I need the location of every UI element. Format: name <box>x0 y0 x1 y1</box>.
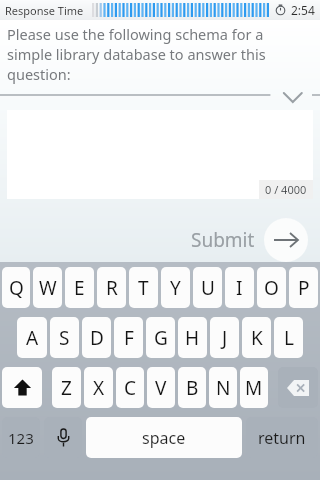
button[interactable]: Collapse <box>276 91 306 107</box>
button[interactable]: J <box>210 317 239 358</box>
staticText: E <box>74 275 85 301</box>
button[interactable]: return <box>246 417 318 458</box>
button[interactable]: Y <box>161 267 190 308</box>
staticText: return <box>258 427 306 449</box>
button[interactable]: E <box>65 267 94 308</box>
staticText: Q <box>9 275 24 301</box>
button[interactable]: H <box>178 317 207 358</box>
staticText: J <box>222 325 228 351</box>
staticText: W <box>39 275 57 301</box>
button[interactable]: 0 / 4000 <box>7 110 313 199</box>
staticText: M <box>245 375 263 401</box>
staticText: O <box>264 275 279 301</box>
button[interactable]: P <box>289 267 318 308</box>
button[interactable]: F <box>114 317 143 358</box>
staticText: H <box>185 325 200 351</box>
staticText: I <box>236 275 243 301</box>
staticText: Y <box>170 275 181 301</box>
button[interactable]: G <box>146 317 175 358</box>
button[interactable]: S <box>50 317 79 358</box>
button[interactable]: U <box>193 267 222 308</box>
staticText: D <box>90 325 104 351</box>
button[interactable]: I <box>225 267 254 308</box>
staticText: R <box>106 275 118 301</box>
staticText: P <box>298 275 310 301</box>
button[interactable]: Z <box>52 367 81 408</box>
button[interactable]: Shift <box>2 367 42 408</box>
staticText: L <box>284 325 294 351</box>
button[interactable]: X <box>84 367 113 408</box>
button[interactable]: R <box>97 267 126 308</box>
button[interactable]: T <box>129 267 158 308</box>
button[interactable]: Backspace <box>278 367 318 408</box>
button[interactable]: space <box>86 417 242 458</box>
button[interactable]: W <box>33 267 62 308</box>
staticText: Submit <box>191 227 255 253</box>
staticText: Z <box>61 375 72 401</box>
button[interactable]: O <box>257 267 286 308</box>
button[interactable]: B <box>178 367 206 408</box>
button[interactable]: D <box>82 317 111 358</box>
button[interactable]: Q <box>2 267 30 308</box>
button[interactable]: N <box>209 367 237 408</box>
staticText: Response Time <box>5 3 84 18</box>
staticText: 2:54 <box>291 2 315 18</box>
staticText: T <box>138 275 149 301</box>
staticText: Please use the following schema for a si… <box>7 24 306 84</box>
staticText: V <box>155 375 167 401</box>
button[interactable]: A <box>17 317 47 358</box>
button[interactable]: 123 <box>2 417 40 458</box>
staticText: N <box>216 375 231 401</box>
staticText: 123 <box>8 428 34 448</box>
button[interactable]: Submit <box>191 218 308 262</box>
button[interactable]: Voice input <box>44 417 82 458</box>
button[interactable]: L <box>274 317 303 358</box>
staticText: K <box>251 325 263 351</box>
staticText: F <box>124 325 134 351</box>
button[interactable]: M <box>240 367 268 408</box>
staticText: G <box>154 325 168 351</box>
staticText: B <box>186 375 199 401</box>
staticText: space <box>142 427 186 449</box>
staticText: A <box>26 325 39 351</box>
staticText: 0 / 4000 <box>265 182 307 197</box>
button[interactable]: V <box>147 367 175 408</box>
staticText: U <box>201 275 215 301</box>
button[interactable]: K <box>242 317 271 358</box>
staticText: X <box>93 375 105 401</box>
button[interactable]: C <box>116 367 144 408</box>
staticText: S <box>59 325 70 351</box>
staticText: C <box>124 375 137 401</box>
